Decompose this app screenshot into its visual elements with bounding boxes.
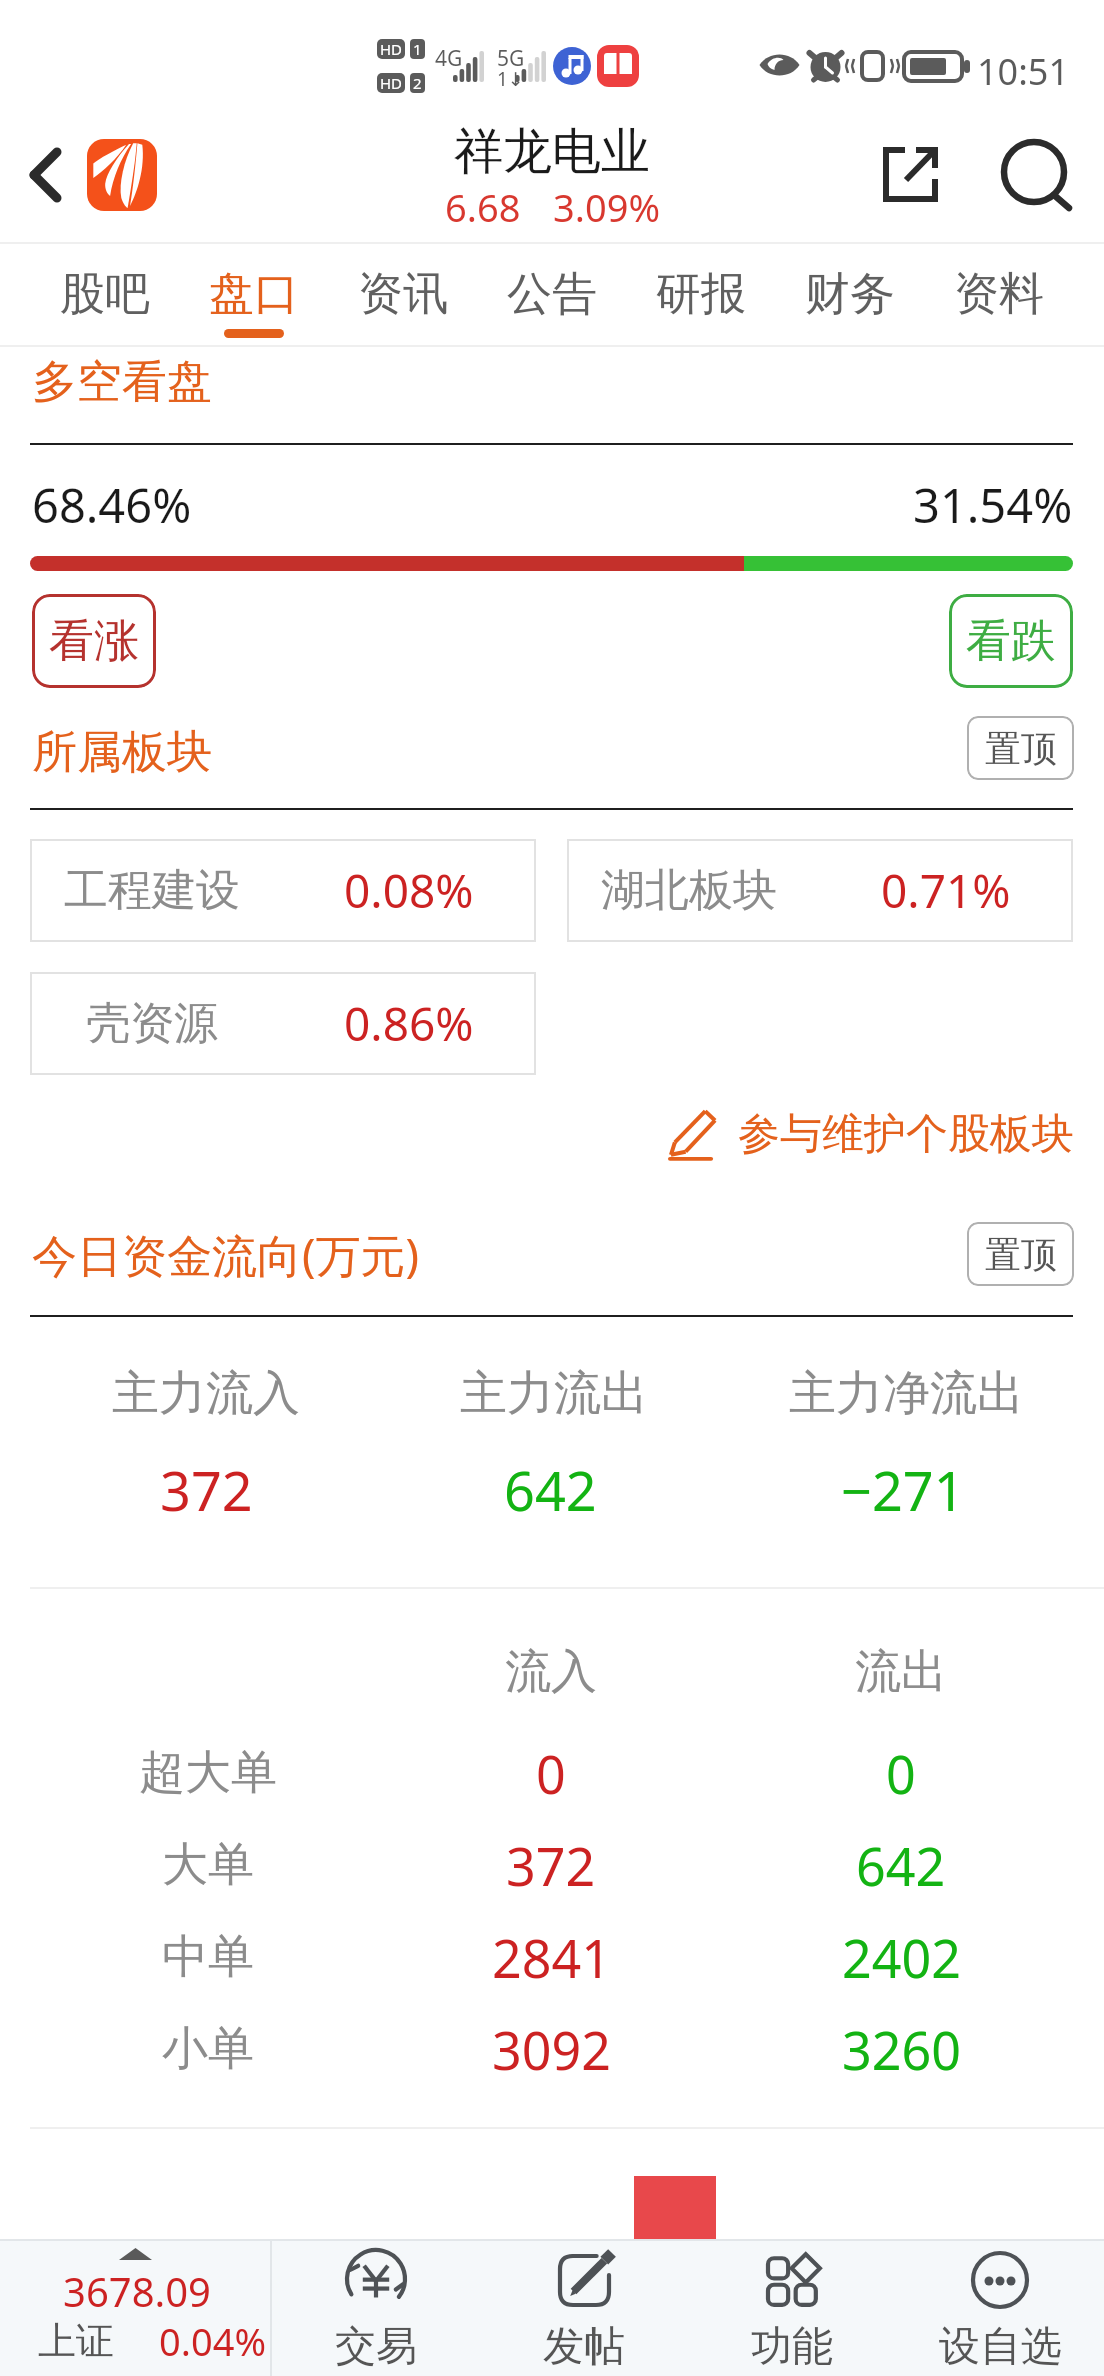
button[interactable]: 发帖 xyxy=(480,2241,688,2376)
button[interactable]: 公告 xyxy=(477,244,626,345)
staticText: 372 xyxy=(160,1453,253,1527)
staticText: 公告 xyxy=(507,266,597,323)
staticText: 0.08% xyxy=(344,859,474,922)
staticText: 主力流出 xyxy=(460,1364,648,1423)
staticText: 主力流入 xyxy=(112,1364,300,1423)
button[interactable]: 置顶 xyxy=(967,1222,1074,1286)
button[interactable]: 财务 xyxy=(775,244,924,345)
staticText: 6.68 xyxy=(445,181,521,233)
staticText: 小单 xyxy=(162,2020,254,2078)
staticText: 372 xyxy=(506,1830,596,1901)
staticText: 1↓ xyxy=(497,66,524,92)
button[interactable]: 交易 xyxy=(272,2241,480,2376)
staticText: 2841 xyxy=(492,1922,611,1993)
button[interactable]: 设自选 xyxy=(896,2241,1104,2376)
button[interactable]: 小单 xyxy=(0,2003,1104,2095)
staticText: 5G xyxy=(497,44,525,73)
staticText: 所属板块 xyxy=(32,724,212,781)
button[interactable]: 湖北板块 xyxy=(567,839,1073,942)
button[interactable]: 壳资源 xyxy=(30,972,536,1075)
button[interactable]: 中单 xyxy=(0,1911,1104,2003)
button[interactable]: 置顶 xyxy=(967,716,1074,780)
button[interactable]: 资料 xyxy=(924,244,1073,345)
button[interactable]: Share xyxy=(862,112,958,212)
staticText: 0.71% xyxy=(881,859,1011,922)
staticText: 工程建设 xyxy=(64,863,240,918)
staticText: 股吧 xyxy=(60,266,150,323)
staticText: 642 xyxy=(856,1830,946,1901)
staticText: 0.04% xyxy=(159,2315,266,2367)
button[interactable]: 看跌 xyxy=(949,594,1073,688)
staticText: 湖北板块 xyxy=(601,863,777,918)
staticText: 多空看盘 xyxy=(32,354,212,411)
staticText: 2 xyxy=(413,73,422,93)
staticText: 发帖 xyxy=(543,2321,625,2373)
staticText: 0 xyxy=(536,1738,566,1809)
button[interactable]: App home xyxy=(87,139,157,211)
staticText: 设自选 xyxy=(939,2321,1062,2373)
button[interactable]: 工程建设 xyxy=(30,839,536,942)
staticText: HD xyxy=(380,39,403,59)
staticText: 4G xyxy=(435,44,463,73)
staticText: 财务 xyxy=(805,266,895,323)
staticText: 壳资源 xyxy=(86,996,218,1051)
staticText: 2402 xyxy=(842,1922,961,1993)
staticText: 流出 xyxy=(855,1643,947,1701)
button[interactable]: 盘口 xyxy=(179,244,328,345)
staticText: 上证 xyxy=(38,2317,114,2365)
button[interactable]: 看涨 xyxy=(32,594,156,688)
button[interactable]: 功能 xyxy=(688,2241,896,2376)
staticText: 中单 xyxy=(162,1928,254,1986)
staticText: 交易 xyxy=(335,2321,417,2373)
staticText: 资讯 xyxy=(358,266,448,323)
staticText: 3260 xyxy=(842,2014,961,2085)
staticText: 今日资金流向(万元) xyxy=(32,1224,420,1285)
staticText: 3092 xyxy=(492,2014,611,2085)
button[interactable]: 超大单 xyxy=(0,1727,1104,1819)
staticText: 超大单 xyxy=(139,1744,277,1802)
staticText: 参与维护个股板块 xyxy=(738,1108,1074,1161)
staticText: 3.09% xyxy=(553,181,660,233)
staticText: 主力净流出 xyxy=(789,1364,1024,1423)
button[interactable]: 股吧 xyxy=(30,244,179,345)
staticText: 大单 xyxy=(162,1836,254,1894)
button[interactable]: 资讯 xyxy=(328,244,477,345)
staticText: 置顶 xyxy=(985,1232,1057,1277)
button[interactable]: 参与维护个股板块 xyxy=(0,1106,1074,1162)
staticText: 置顶 xyxy=(985,726,1057,771)
staticText: −271 xyxy=(841,1453,965,1527)
button[interactable]: 研报 xyxy=(626,244,775,345)
button[interactable]: Search xyxy=(985,112,1085,212)
staticText: 研报 xyxy=(656,266,746,323)
staticText: 0 xyxy=(886,1738,916,1809)
staticText: 642 xyxy=(504,1453,597,1527)
staticText: 68.46% xyxy=(32,473,192,537)
button[interactable]: 大单 xyxy=(0,1819,1104,1911)
staticText: 0.86% xyxy=(344,992,474,1055)
button[interactable]: 3678.09 xyxy=(0,2241,270,2376)
staticText: 祥龙电业 xyxy=(454,121,650,183)
staticText: 1 xyxy=(413,39,422,59)
staticText: 看跌 xyxy=(966,613,1056,670)
staticText: 31.54% xyxy=(913,473,1073,537)
staticText: 资料 xyxy=(954,266,1044,323)
staticText: 盘口 xyxy=(209,266,299,323)
staticText: HD xyxy=(380,73,403,93)
staticText: 功能 xyxy=(751,2321,833,2373)
staticText: 流入 xyxy=(505,1643,597,1701)
staticText: 3678.09 xyxy=(63,2264,211,2318)
staticText: 10:51 xyxy=(977,47,1070,96)
staticText: 看涨 xyxy=(49,613,139,670)
button[interactable]: Back xyxy=(0,126,96,230)
